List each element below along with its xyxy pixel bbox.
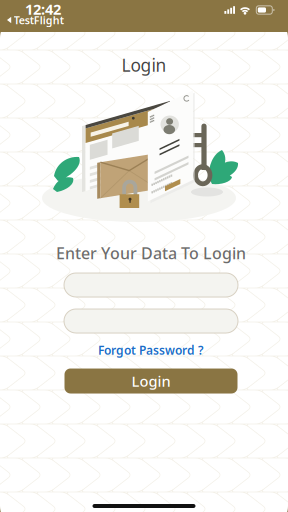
staticText: Login [131, 371, 170, 391]
staticText: Forgot Password ? [98, 342, 204, 358]
staticText: TestFlight [14, 13, 64, 27]
button[interactable]: Username [64, 273, 238, 297]
staticText: Login [121, 53, 166, 76]
staticText: 12:42 [25, 0, 61, 19]
staticText: Enter Your Data To Login [56, 242, 246, 264]
button[interactable]: Login [64, 368, 237, 393]
button[interactable]: Forgot Password ? [91, 343, 211, 357]
button[interactable]: Password [64, 309, 238, 333]
